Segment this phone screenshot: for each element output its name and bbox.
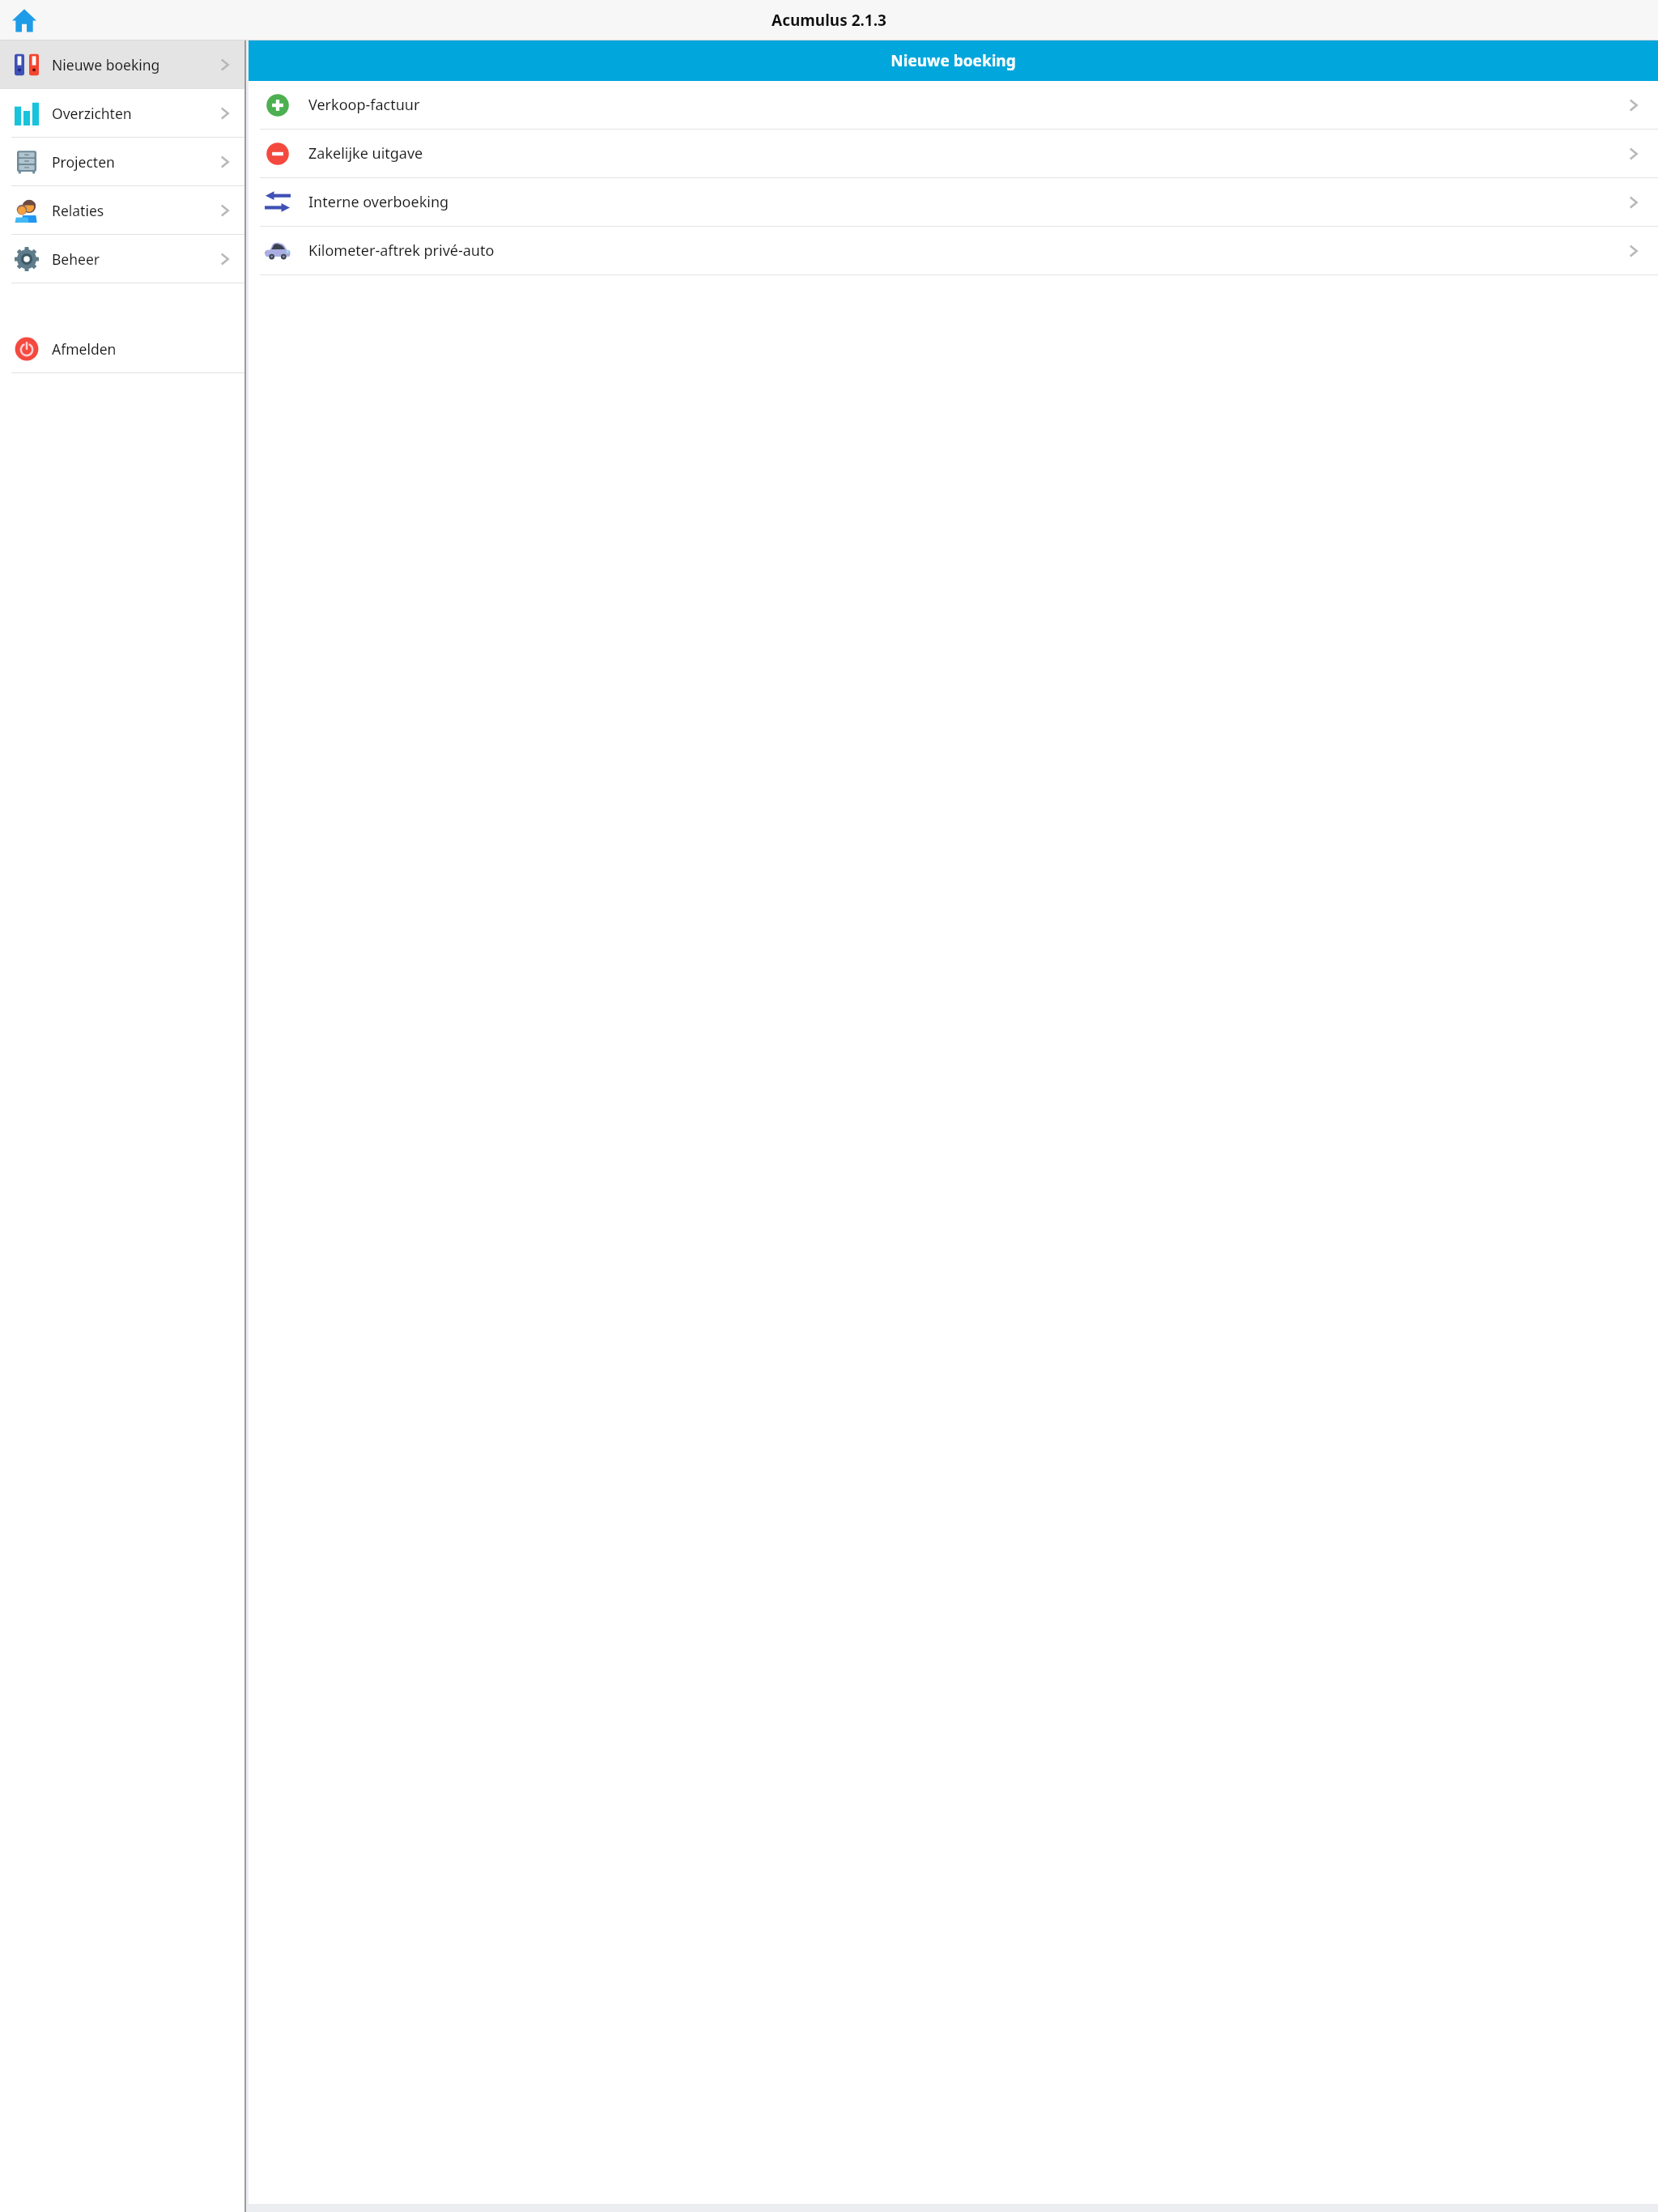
staticText: Kilometer-aftrek privé-auto — [308, 240, 495, 261]
staticText: Beheer — [52, 249, 100, 269]
staticText: Relaties — [52, 201, 104, 220]
button[interactable]: Afmelden — [0, 325, 244, 372]
staticText: Verkoop-factuur — [308, 95, 420, 115]
staticText: Nieuwe boeking — [891, 50, 1016, 71]
button[interactable]: Interne overboeking — [249, 178, 1658, 226]
staticText: Zakelijke uitgave — [308, 143, 423, 164]
button[interactable]: Relaties — [0, 186, 244, 234]
button[interactable]: Beheer — [0, 235, 244, 283]
staticText: Interne overboeking — [308, 192, 449, 212]
button[interactable]: Verkoop-factuur — [249, 81, 1658, 129]
staticText: Afmelden — [52, 339, 117, 359]
staticText: Acumulus 2.1.3 — [772, 10, 886, 31]
button[interactable]: Overzichten — [0, 89, 244, 137]
button[interactable]: Home — [6, 2, 42, 38]
button[interactable]: Kilometer-aftrek privé-auto — [249, 227, 1658, 274]
button[interactable]: Nieuwe boeking — [0, 40, 244, 88]
button[interactable]: Projecten — [0, 138, 244, 185]
staticText: Projecten — [52, 152, 115, 172]
staticText: Overzichten — [52, 104, 132, 123]
staticText: Nieuwe boeking — [52, 55, 160, 74]
button[interactable]: Zakelijke uitgave — [249, 130, 1658, 177]
